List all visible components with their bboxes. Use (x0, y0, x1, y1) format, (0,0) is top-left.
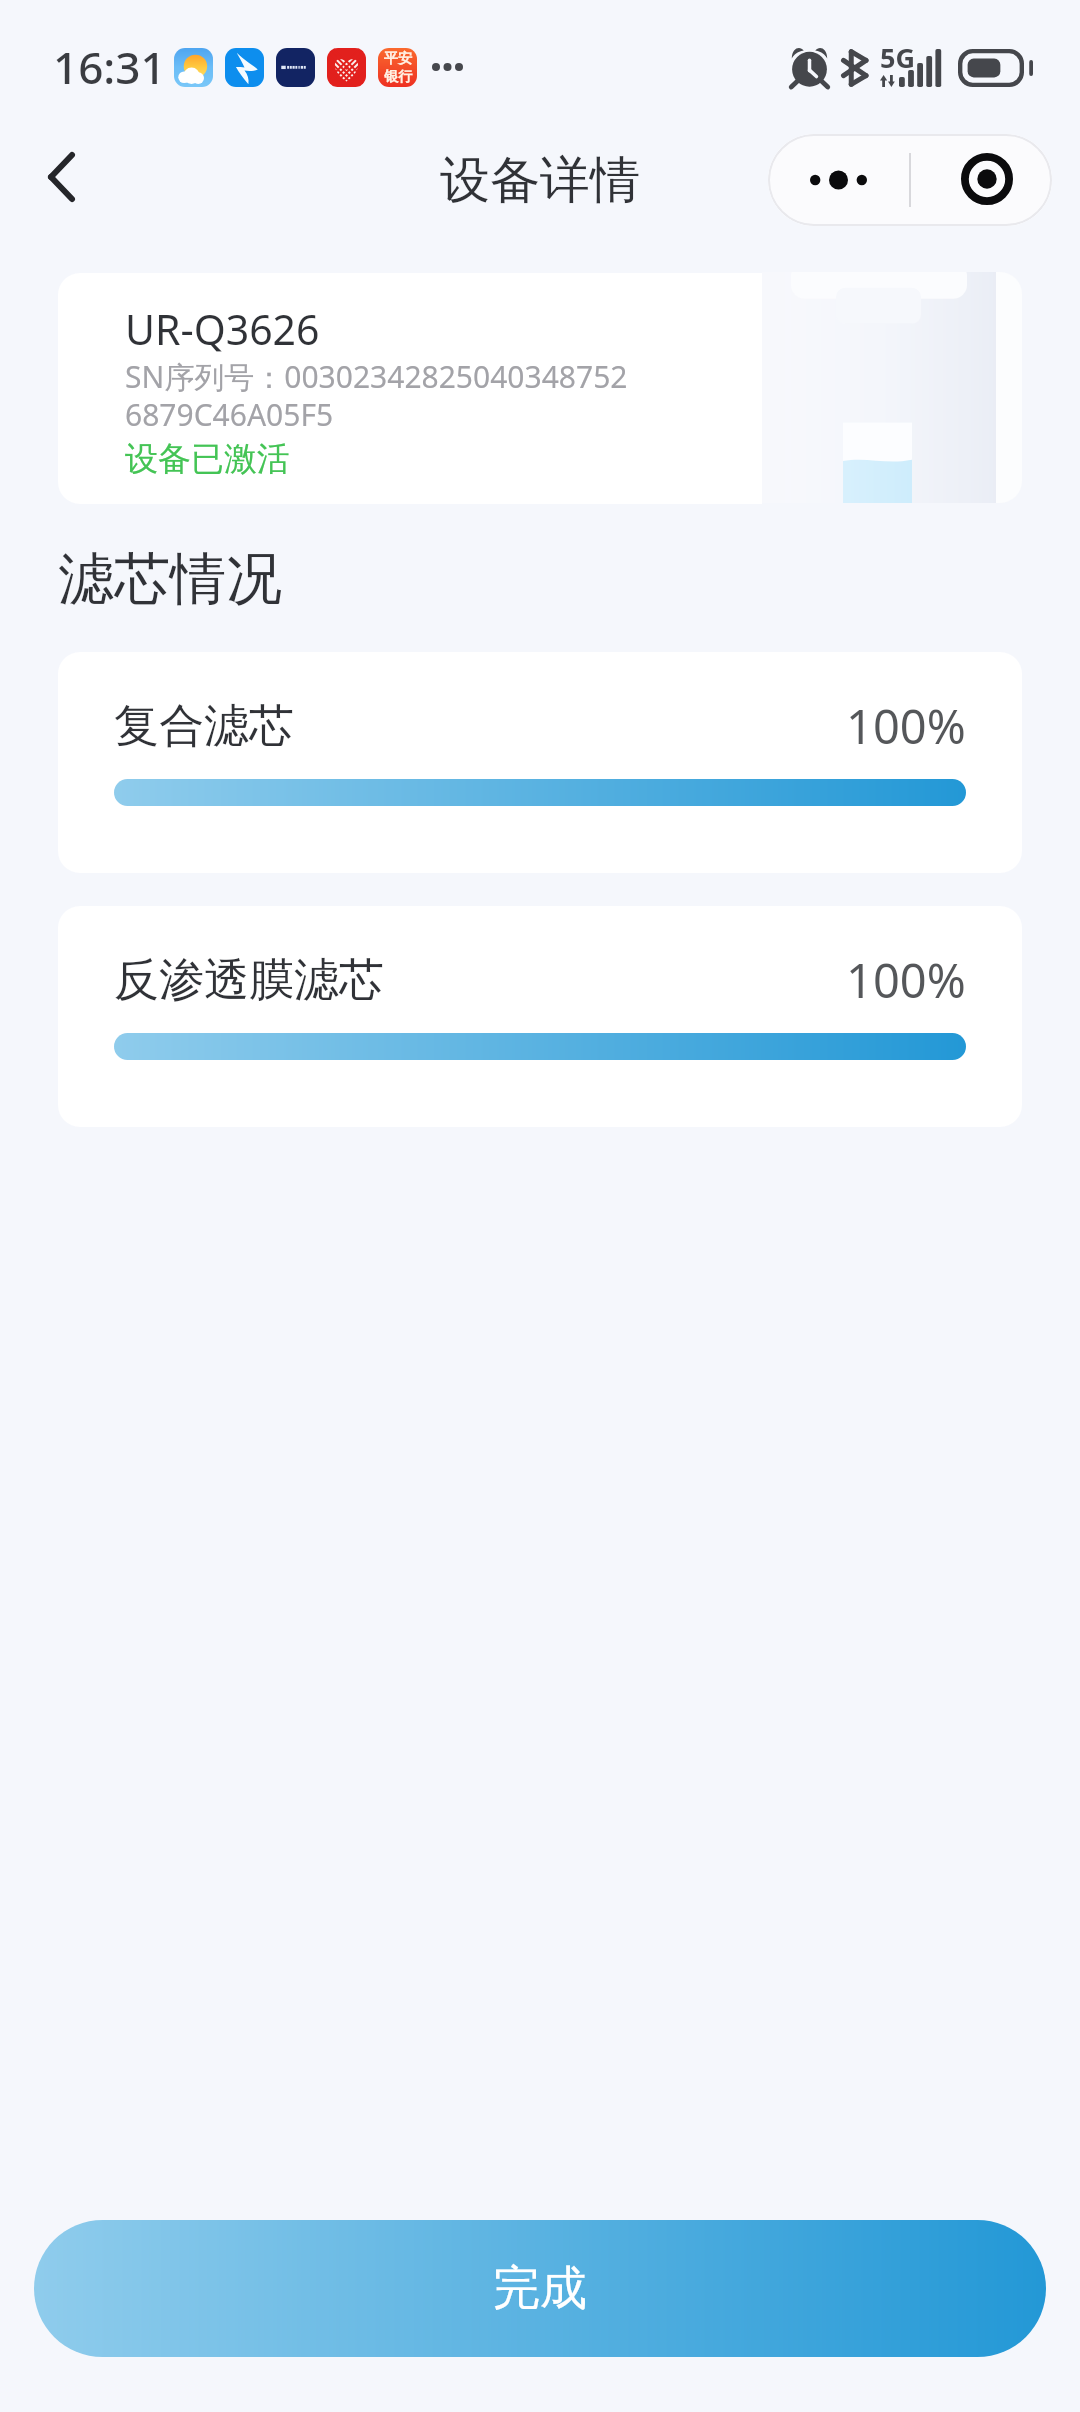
button[interactable]: 完成 (34, 2220, 1046, 2357)
button[interactable]: 反渗透膜滤芯 (58, 906, 1022, 1127)
staticText: 平安 (384, 50, 412, 68)
staticText: 反渗透膜滤芯 (114, 952, 384, 1009)
staticText: UR-Q3626 (125, 301, 320, 357)
button[interactable] (58, 273, 762, 504)
button[interactable]: More options (768, 134, 909, 226)
staticText: 100% (846, 948, 966, 1012)
staticText: 滤芯情况 (58, 544, 282, 615)
staticText: 银行 (384, 68, 412, 86)
staticText: SN序列号：00302342825040348752 (125, 356, 628, 397)
staticText: 100% (846, 694, 966, 758)
button[interactable]: Close mini program (911, 134, 1052, 226)
button[interactable]: 复合滤芯 (58, 652, 1022, 873)
staticText: 设备详情 (440, 149, 640, 212)
staticText: 16:31 (53, 37, 166, 97)
staticText: 5G (880, 39, 915, 76)
staticText: 设备已激活 (125, 438, 290, 480)
staticText: 复合滤芯 (114, 698, 294, 755)
staticText: 完成 (493, 2259, 587, 2318)
staticText: 6879C46A05F5 (125, 394, 334, 435)
button[interactable]: Back (6, 122, 116, 232)
staticText: PING AN (387, 86, 408, 87)
